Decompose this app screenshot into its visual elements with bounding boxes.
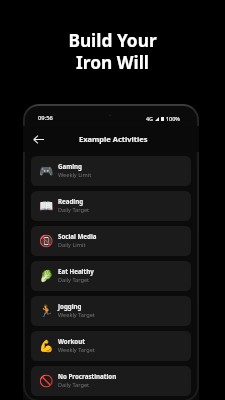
staticText: Weekly Target (58, 311, 95, 319)
staticText: Workout (58, 337, 85, 345)
staticText: Weekly Limit (58, 171, 92, 179)
staticText: 09:56 (38, 114, 53, 122)
button[interactable]: 🥬 (31, 261, 191, 291)
staticText: 📖 (39, 199, 54, 213)
staticText: 💪 (39, 339, 54, 353)
staticText: Reading (58, 197, 84, 205)
staticText: 📵 (39, 234, 54, 248)
button[interactable]: 📖 (31, 191, 191, 221)
staticText: Eat Healthy (58, 267, 94, 275)
staticText: 🚫 (39, 374, 54, 388)
staticText: Social Media (58, 232, 97, 240)
staticText: Gaming (58, 162, 83, 170)
button[interactable]: 💪 (31, 331, 191, 361)
staticText: 🥬 (39, 269, 54, 283)
staticText: Daily Target (58, 276, 90, 284)
button[interactable]: Back (28, 129, 48, 149)
staticText: 100% (166, 115, 180, 122)
button[interactable]: 🎮 (31, 156, 191, 186)
staticText: Daily Target (58, 381, 90, 389)
staticText: 4G (146, 115, 154, 122)
button[interactable]: 📵 (31, 226, 191, 256)
staticText: 🏃 (39, 304, 54, 318)
staticText: Jogging (58, 302, 82, 310)
staticText: Example Activities (79, 134, 148, 144)
staticText: Weekly Target (58, 346, 95, 354)
button[interactable]: 🏃 (31, 296, 191, 326)
staticText: 🎮 (39, 164, 54, 178)
staticText: Daily Target (58, 206, 90, 214)
staticText: Build Your Iron Will (68, 29, 157, 74)
staticText: Daily Limit (58, 241, 86, 249)
staticText: No Procrastination (58, 372, 117, 380)
button[interactable]: 🚫 (31, 366, 191, 396)
